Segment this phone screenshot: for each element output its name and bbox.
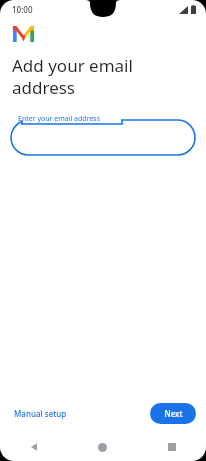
staticText: Enter your email address: [18, 114, 101, 124]
button[interactable]: Manual setup: [10, 402, 71, 425]
button[interactable]: Recents: [137, 433, 206, 461]
staticText: 10:00: [12, 4, 33, 15]
button[interactable]: Next: [150, 403, 196, 424]
button[interactable]: Back: [0, 433, 68, 461]
button[interactable]: Home: [68, 433, 137, 461]
button[interactable]: Enter your email address: [10, 115, 196, 155]
staticText: Add your email address: [12, 54, 166, 99]
staticText: Manual setup: [14, 408, 67, 419]
staticText: Next: [164, 408, 183, 419]
